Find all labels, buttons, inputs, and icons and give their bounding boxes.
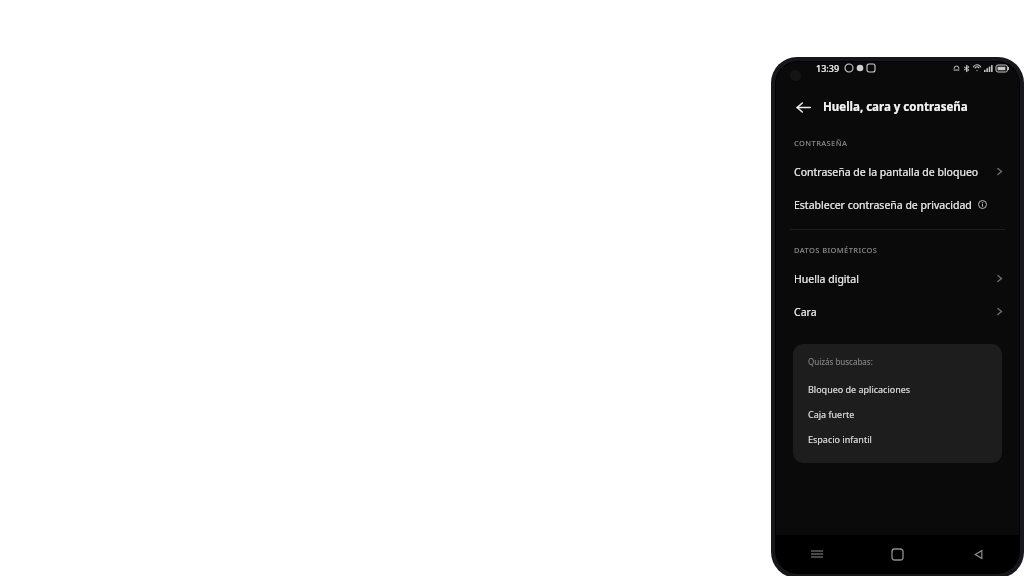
button[interactable]: Volver (938, 535, 1019, 573)
staticText: 13:39 (816, 62, 840, 74)
button[interactable]: Cara (776, 295, 1019, 328)
button[interactable]: Establecer contraseña de privacidad (776, 188, 1019, 221)
staticText: DATOS BIOMÉTRICOS (794, 245, 878, 255)
staticText: Contraseña de la pantalla de bloqueo (794, 165, 979, 179)
staticText: Quizás buscabas: (808, 356, 873, 367)
staticText: Espacio infantil (808, 433, 872, 445)
button[interactable]: Atrás (790, 94, 816, 120)
button[interactable]: Huella digital (776, 262, 1019, 295)
staticText: CONTRASEÑA (794, 138, 848, 148)
button[interactable]: Espacio infantil (793, 426, 1002, 451)
button[interactable]: Contraseña de la pantalla de bloqueo (776, 155, 1019, 188)
button[interactable]: Inicio (857, 535, 938, 573)
button[interactable]: Recientes (776, 535, 857, 573)
button[interactable]: Caja fuerte (793, 401, 1002, 426)
staticText: Bloqueo de aplicaciones (808, 383, 911, 395)
staticText: Huella digital (794, 272, 859, 286)
staticText: Huella, cara y contraseña (823, 99, 968, 115)
button[interactable]: Bloqueo de aplicaciones (793, 376, 1002, 401)
staticText: Cara (794, 305, 817, 319)
staticText: Caja fuerte (808, 408, 855, 420)
staticText: Establecer contraseña de privacidad (794, 198, 972, 212)
